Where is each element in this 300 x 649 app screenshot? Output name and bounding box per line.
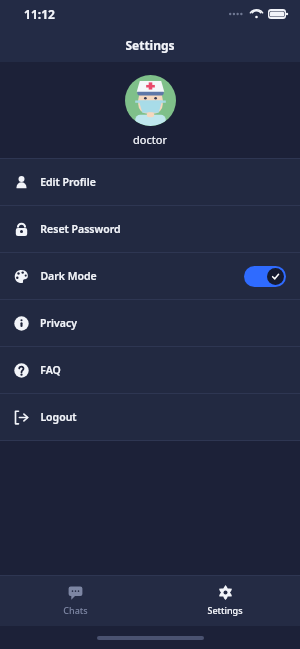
button[interactable]: Chats: [0, 576, 150, 626]
button[interactable]: Edit Profile: [0, 159, 300, 205]
button[interactable]: Logout: [0, 394, 300, 440]
staticText: Dark Mode: [40, 269, 97, 283]
staticText: Settings: [125, 37, 175, 53]
button[interactable]: Profile photo: [125, 75, 176, 126]
staticText: Settings: [207, 604, 243, 616]
button[interactable]: Privacy: [0, 300, 300, 346]
button[interactable]: Dark Mode: [0, 253, 300, 299]
staticText: FAQ: [40, 363, 61, 377]
staticText: Privacy: [40, 316, 77, 330]
staticText: Edit Profile: [40, 175, 96, 189]
button[interactable]: Reset Password: [0, 206, 300, 252]
staticText: 11:12: [24, 6, 55, 22]
button[interactable]: FAQ: [0, 347, 300, 393]
staticText: Reset Password: [40, 222, 121, 236]
staticText: Chats: [63, 604, 88, 616]
staticText: Logout: [40, 410, 77, 424]
button[interactable]: Dark Mode toggle: [244, 266, 286, 287]
button[interactable]: Settings: [150, 576, 300, 626]
staticText: doctor: [133, 132, 167, 147]
